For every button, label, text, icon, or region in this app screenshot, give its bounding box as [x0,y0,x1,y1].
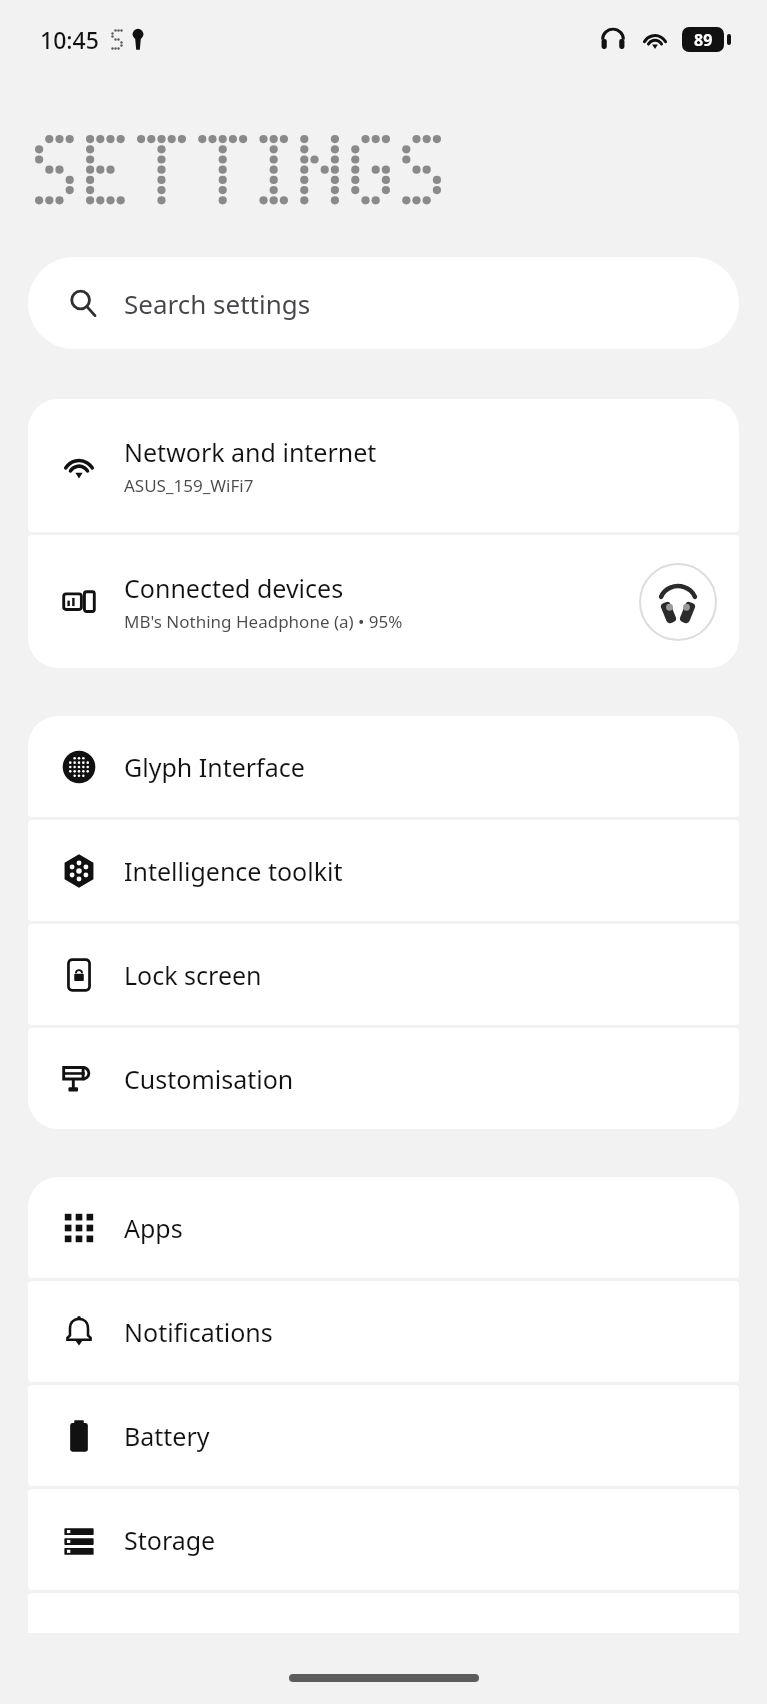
staticText: Connected devices [124,571,344,605]
button[interactable]: Apps [28,1177,739,1278]
staticText: 10:45 [40,24,99,55]
button[interactable]: Battery [28,1385,739,1486]
button[interactable]: Storage [28,1489,739,1590]
staticText: ASUS_159_WiFi7 [124,474,254,497]
button[interactable]: Connected devices [28,535,739,668]
button[interactable]: Search settings [28,257,739,349]
staticText: Storage [124,1523,216,1557]
button[interactable]: Network and internet [28,399,739,532]
staticText: Customisation [124,1062,294,1096]
staticText: Apps [124,1211,183,1245]
staticText: Notifications [124,1315,273,1349]
staticText: Lock screen [124,958,262,992]
button[interactable]: Notifications [28,1281,739,1382]
staticText: Intelligence toolkit [124,854,343,888]
staticText: MB's Nothing Headphone (a) • 95% [124,610,403,633]
staticText: Network and internet [124,435,377,469]
staticText: Search settings [124,286,311,321]
button[interactable]: Glyph Interface [28,716,739,817]
staticText: 89 [694,29,713,51]
button[interactable]: Intelligence toolkit [28,820,739,921]
staticText: Battery [124,1419,210,1453]
staticText: Glyph Interface [124,750,305,784]
button[interactable]: Customisation [28,1028,739,1129]
button[interactable]: Lock screen [28,924,739,1025]
